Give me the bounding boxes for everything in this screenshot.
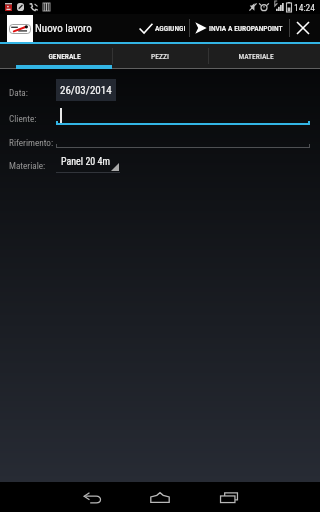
button[interactable]: AGGIUNGI bbox=[139, 14, 191, 42]
button[interactable] bbox=[56, 108, 310, 125]
staticText: 26/03/2014 bbox=[60, 84, 112, 97]
staticText: Materiale: bbox=[9, 160, 46, 171]
button[interactable] bbox=[56, 132, 310, 148]
button[interactable]: GENERALE bbox=[16, 44, 112, 69]
staticText: Riferimento: bbox=[9, 137, 54, 148]
button[interactable]: Chiudi bbox=[288, 14, 318, 42]
button[interactable]: PEZZI bbox=[112, 44, 208, 69]
button[interactable]: 26/03/2014 bbox=[56, 79, 116, 101]
button[interactable]: Indietro bbox=[68, 482, 116, 512]
button[interactable]: MATERIALE bbox=[208, 44, 304, 69]
staticText: Nuovo lavoro bbox=[35, 22, 92, 35]
button[interactable]: Home bbox=[136, 482, 184, 512]
staticText: INVIA A EUROPANPOINT bbox=[209, 24, 283, 33]
button[interactable]: Recenti bbox=[205, 482, 253, 512]
button[interactable]: App bbox=[7, 15, 33, 42]
staticText: Data: bbox=[9, 87, 28, 98]
staticText: GENERALE bbox=[48, 52, 81, 61]
staticText: Cliente: bbox=[9, 113, 37, 124]
staticText: AGGIUNGI bbox=[155, 24, 186, 33]
button[interactable]: Panel 20 4m bbox=[56, 155, 120, 173]
staticText: 14:24 bbox=[294, 2, 315, 13]
button[interactable]: INVIA A EUROPANPOINT bbox=[194, 14, 286, 42]
staticText: MATERIALE bbox=[238, 52, 274, 61]
staticText: PEZZI bbox=[151, 52, 169, 61]
staticText: Panel 20 4m bbox=[61, 156, 111, 168]
